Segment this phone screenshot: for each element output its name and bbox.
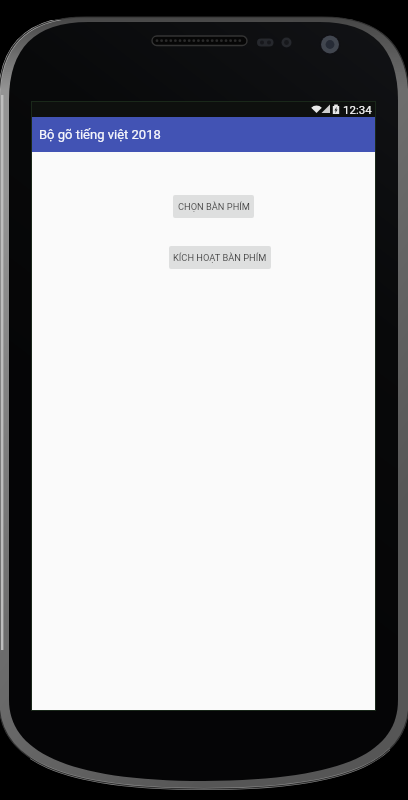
button[interactable]: CHỌN BÀN PHÍM [173, 195, 254, 218]
button[interactable]: KÍCH HOẠT BÀN PHÍM [169, 246, 271, 269]
staticText: CHỌN BÀN PHÍM [178, 201, 250, 212]
staticText: 12:34 [343, 103, 372, 116]
staticText: KÍCH HOẠT BÀN PHÍM [173, 252, 267, 263]
staticText: Bộ gõ tiếng việt 2018 [39, 127, 161, 142]
